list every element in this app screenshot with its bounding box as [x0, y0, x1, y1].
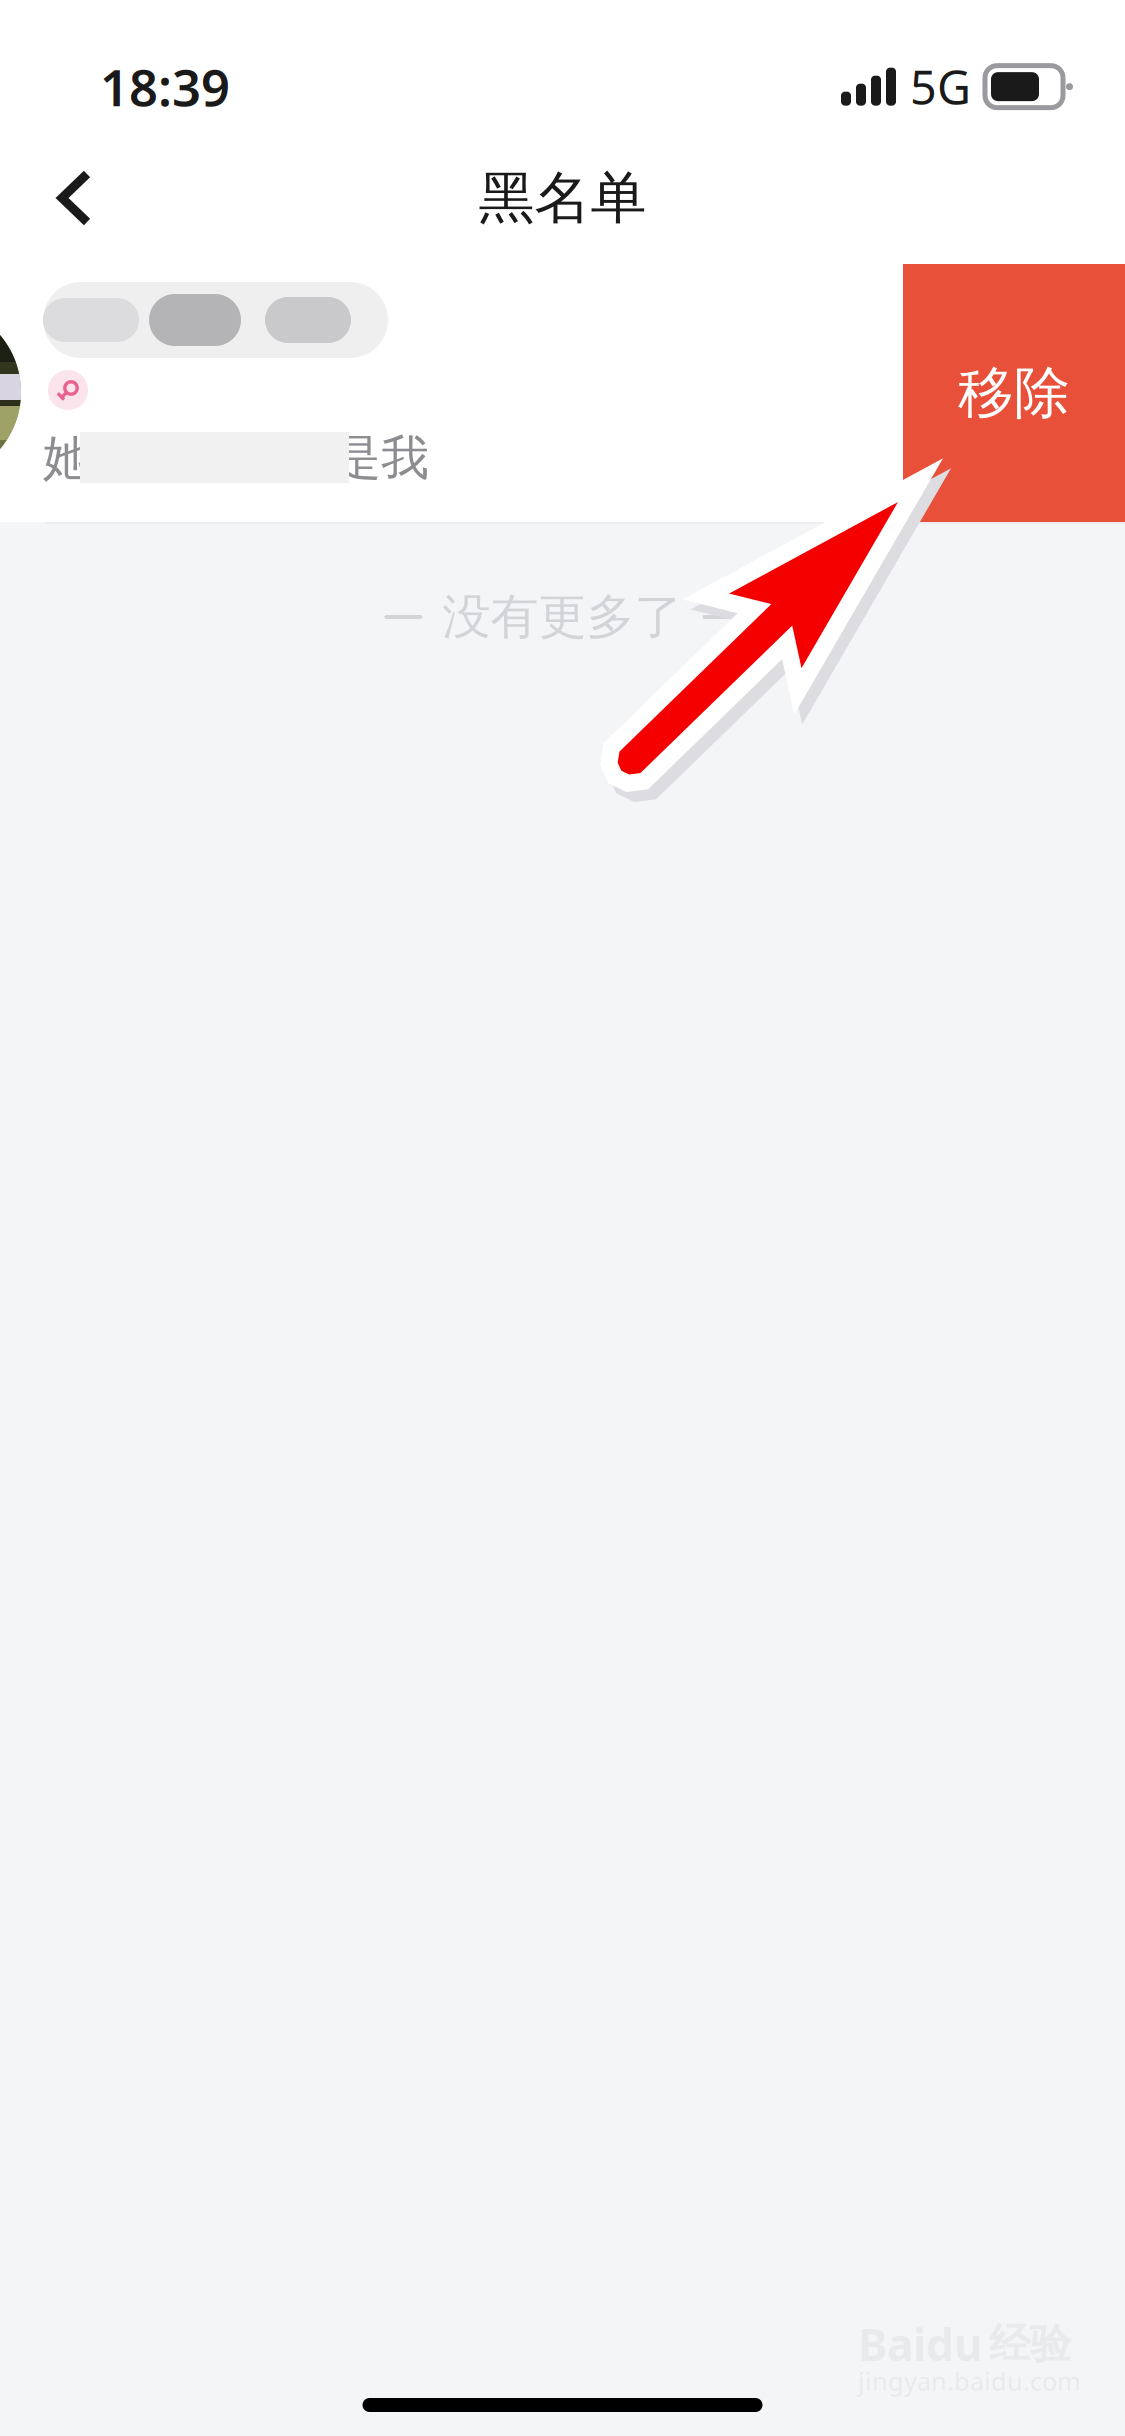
staticText: 18:39: [100, 53, 230, 120]
button[interactable]: 移除: [903, 264, 1125, 522]
staticText: 是我: [333, 428, 429, 487]
staticText: 5G: [910, 56, 971, 118]
staticText: 移除: [958, 359, 1070, 427]
staticText: Baidu: [858, 2315, 983, 2373]
button[interactable]: 返回: [27, 150, 123, 246]
staticText: jingyan.baidu.com: [858, 2364, 1081, 2398]
staticText: 黑名单: [478, 164, 646, 232]
staticText: 她: [43, 428, 91, 487]
staticText: 经验: [989, 2319, 1071, 2369]
staticText: 没有更多了: [442, 587, 682, 646]
